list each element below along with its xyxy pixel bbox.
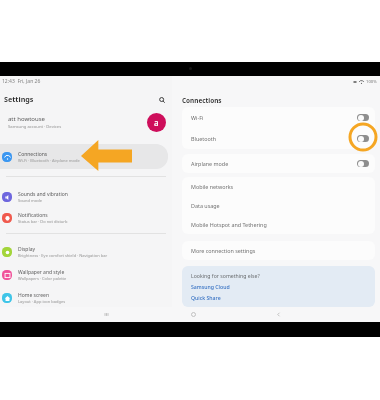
staticText: Wallpapers · Color palette: [18, 276, 67, 281]
staticText: Connections: [18, 151, 48, 158]
staticText: Sound mode: [18, 198, 42, 203]
button[interactable]: Bluetooth: [182, 128, 375, 149]
staticText: Wallpaper and style: [18, 269, 65, 276]
staticText: 100%: [366, 79, 377, 85]
staticText: Home screen: [18, 292, 50, 299]
staticText: Wi-Fi: [191, 114, 357, 121]
staticText: Looking for something else?: [191, 272, 260, 279]
staticText: Airplane mode: [191, 160, 357, 167]
staticText: More connection settings: [191, 247, 256, 254]
staticText: Data usage: [191, 202, 220, 209]
button[interactable]: Mobile Hotspot and Tethering: [182, 215, 375, 234]
staticText: a: [154, 117, 159, 128]
button[interactable]: Looking for something else?: [182, 266, 375, 307]
button[interactable]: Home screen: [0, 287, 172, 309]
staticText: Notifications: [18, 212, 48, 219]
button[interactable]: More connection settings: [182, 241, 375, 260]
button[interactable]: Mobile networks: [182, 177, 375, 196]
staticText: Sounds and vibration: [18, 191, 68, 198]
staticText: Wi-Fi · Bluetooth · Airplane mode: [18, 158, 80, 163]
staticText: Bluetooth: [191, 135, 357, 142]
staticText: Samsung Cloud: [191, 283, 230, 290]
button[interactable]: Airplane mode: [182, 154, 375, 173]
staticText: Status bar · Do not disturb: [18, 219, 68, 224]
button[interactable]: Data usage: [182, 196, 375, 215]
staticText: Samsung account · Devices: [8, 124, 62, 130]
button[interactable]: Back: [271, 307, 286, 322]
staticText: Display: [18, 246, 36, 253]
button[interactable]: Display: [0, 241, 172, 263]
staticText: Quick Share: [191, 294, 221, 301]
staticText: 12:43 Fri, Jan 26: [2, 78, 41, 85]
button[interactable]: Search: [154, 92, 169, 107]
button[interactable]: Home: [186, 307, 201, 322]
button[interactable]: Wi-Fi: [182, 107, 375, 128]
button[interactable]: Sounds and vibration: [0, 186, 172, 208]
button[interactable]: Notifications: [0, 207, 172, 229]
staticText: Connections: [182, 96, 222, 105]
staticText: Mobile Hotspot and Tethering: [191, 221, 267, 228]
staticText: Settings: [4, 94, 34, 104]
button[interactable]: att howtouse: [0, 110, 172, 134]
staticText: Brightness · Eye comfort shield · Naviga…: [18, 253, 108, 258]
staticText: att howtouse: [8, 115, 45, 123]
button[interactable]: Connections: [0, 144, 168, 169]
staticText: Mobile networks: [191, 183, 234, 190]
button[interactable]: Wallpaper and style: [0, 264, 172, 286]
button[interactable]: Recent apps: [99, 307, 114, 322]
staticText: Layout · App icon badges: [18, 299, 66, 304]
